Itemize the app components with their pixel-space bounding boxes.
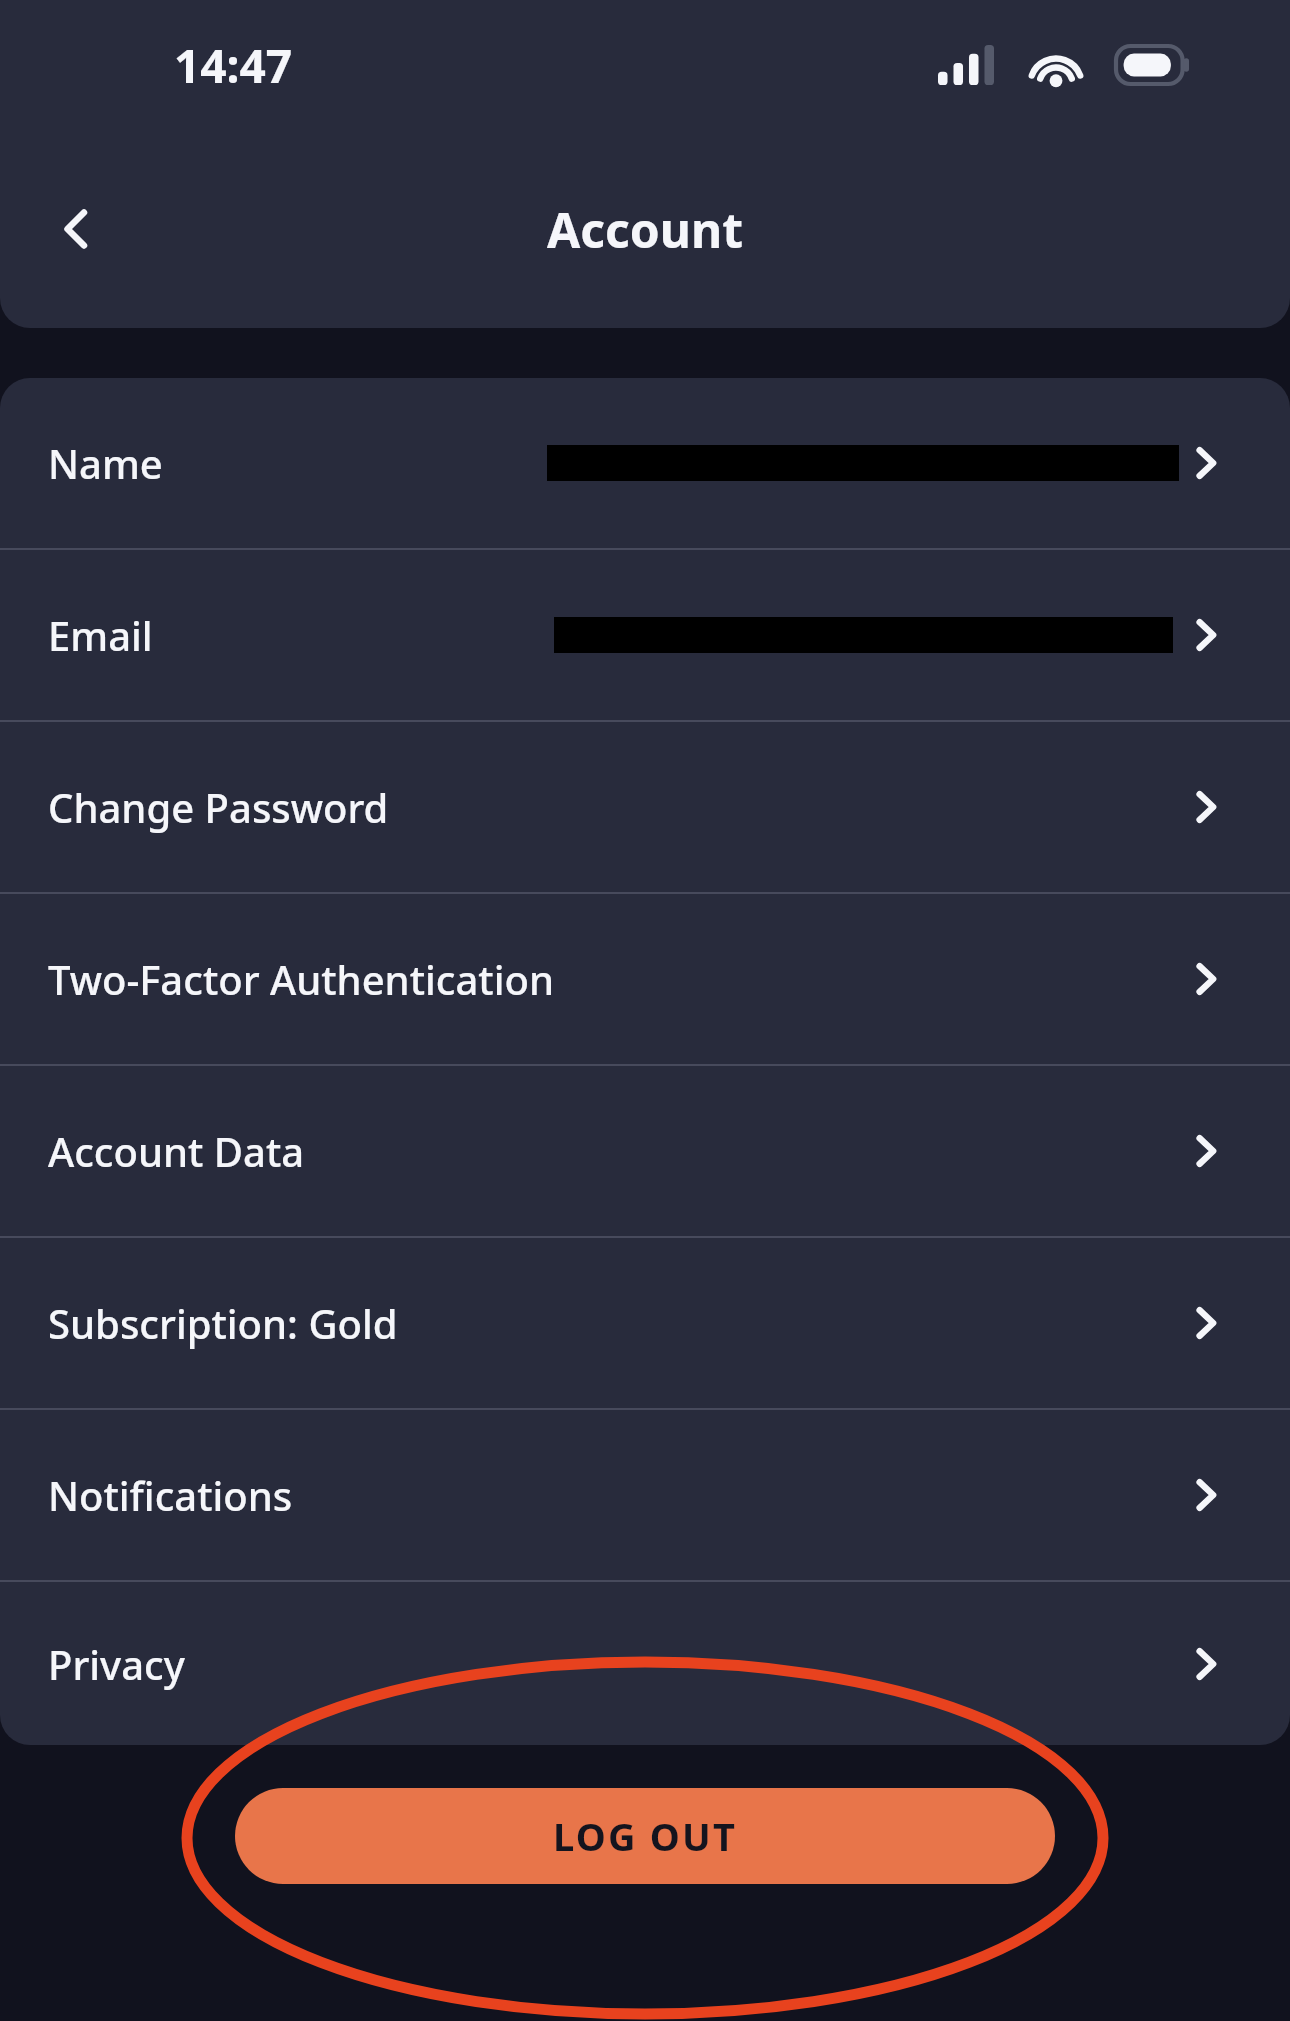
button[interactable]: Two-Factor Authentication <box>0 894 1290 1064</box>
staticText: Email <box>48 608 153 662</box>
button[interactable]: Privacy <box>0 1582 1290 1745</box>
staticText: Privacy <box>48 1637 185 1691</box>
button[interactable]: Name <box>0 378 1290 548</box>
button[interactable]: Account Data <box>0 1066 1290 1236</box>
staticText: Account <box>547 197 743 262</box>
button[interactable]: Back <box>30 183 122 275</box>
staticText: 14:47 <box>174 34 293 97</box>
button[interactable]: Subscription: Gold <box>0 1238 1290 1408</box>
staticText: Account Data <box>48 1124 305 1178</box>
staticText: Name <box>48 436 163 490</box>
button[interactable]: Email <box>0 550 1290 720</box>
staticText: Change Password <box>48 780 389 834</box>
button[interactable]: Change Password <box>0 722 1290 892</box>
staticText: Notifications <box>48 1468 293 1522</box>
button[interactable]: Notifications <box>0 1410 1290 1580</box>
staticText: Two-Factor Authentication <box>48 952 554 1006</box>
staticText: Subscription: Gold <box>48 1296 398 1350</box>
staticText: LOG OUT <box>553 1810 738 1862</box>
button[interactable]: LOG OUT <box>235 1788 1055 1884</box>
